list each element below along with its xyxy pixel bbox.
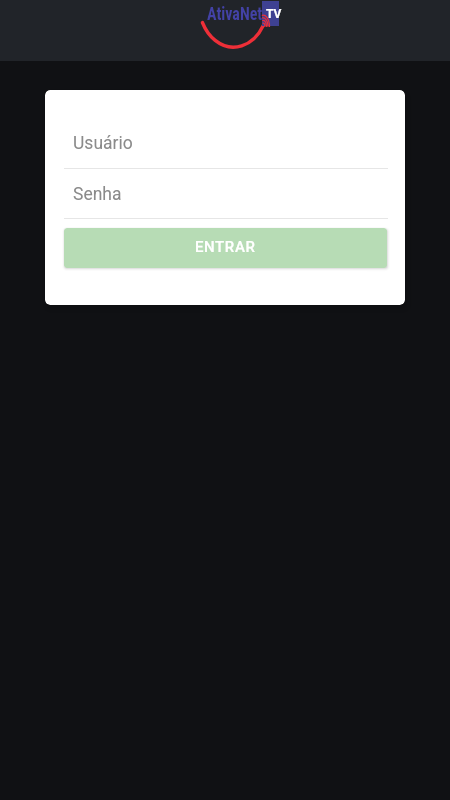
staticText: TV bbox=[266, 7, 282, 21]
other: AtivaNet TV bbox=[196, 0, 286, 52]
button[interactable]: Usuário bbox=[64, 123, 388, 169]
staticText: Senha bbox=[73, 184, 122, 205]
staticText: Usuário bbox=[73, 133, 133, 154]
staticText: ENTRAR bbox=[195, 238, 256, 256]
button[interactable]: Senha bbox=[64, 173, 388, 219]
button[interactable]: ENTRAR bbox=[64, 228, 387, 268]
staticText: AtivaNet bbox=[207, 2, 262, 24]
